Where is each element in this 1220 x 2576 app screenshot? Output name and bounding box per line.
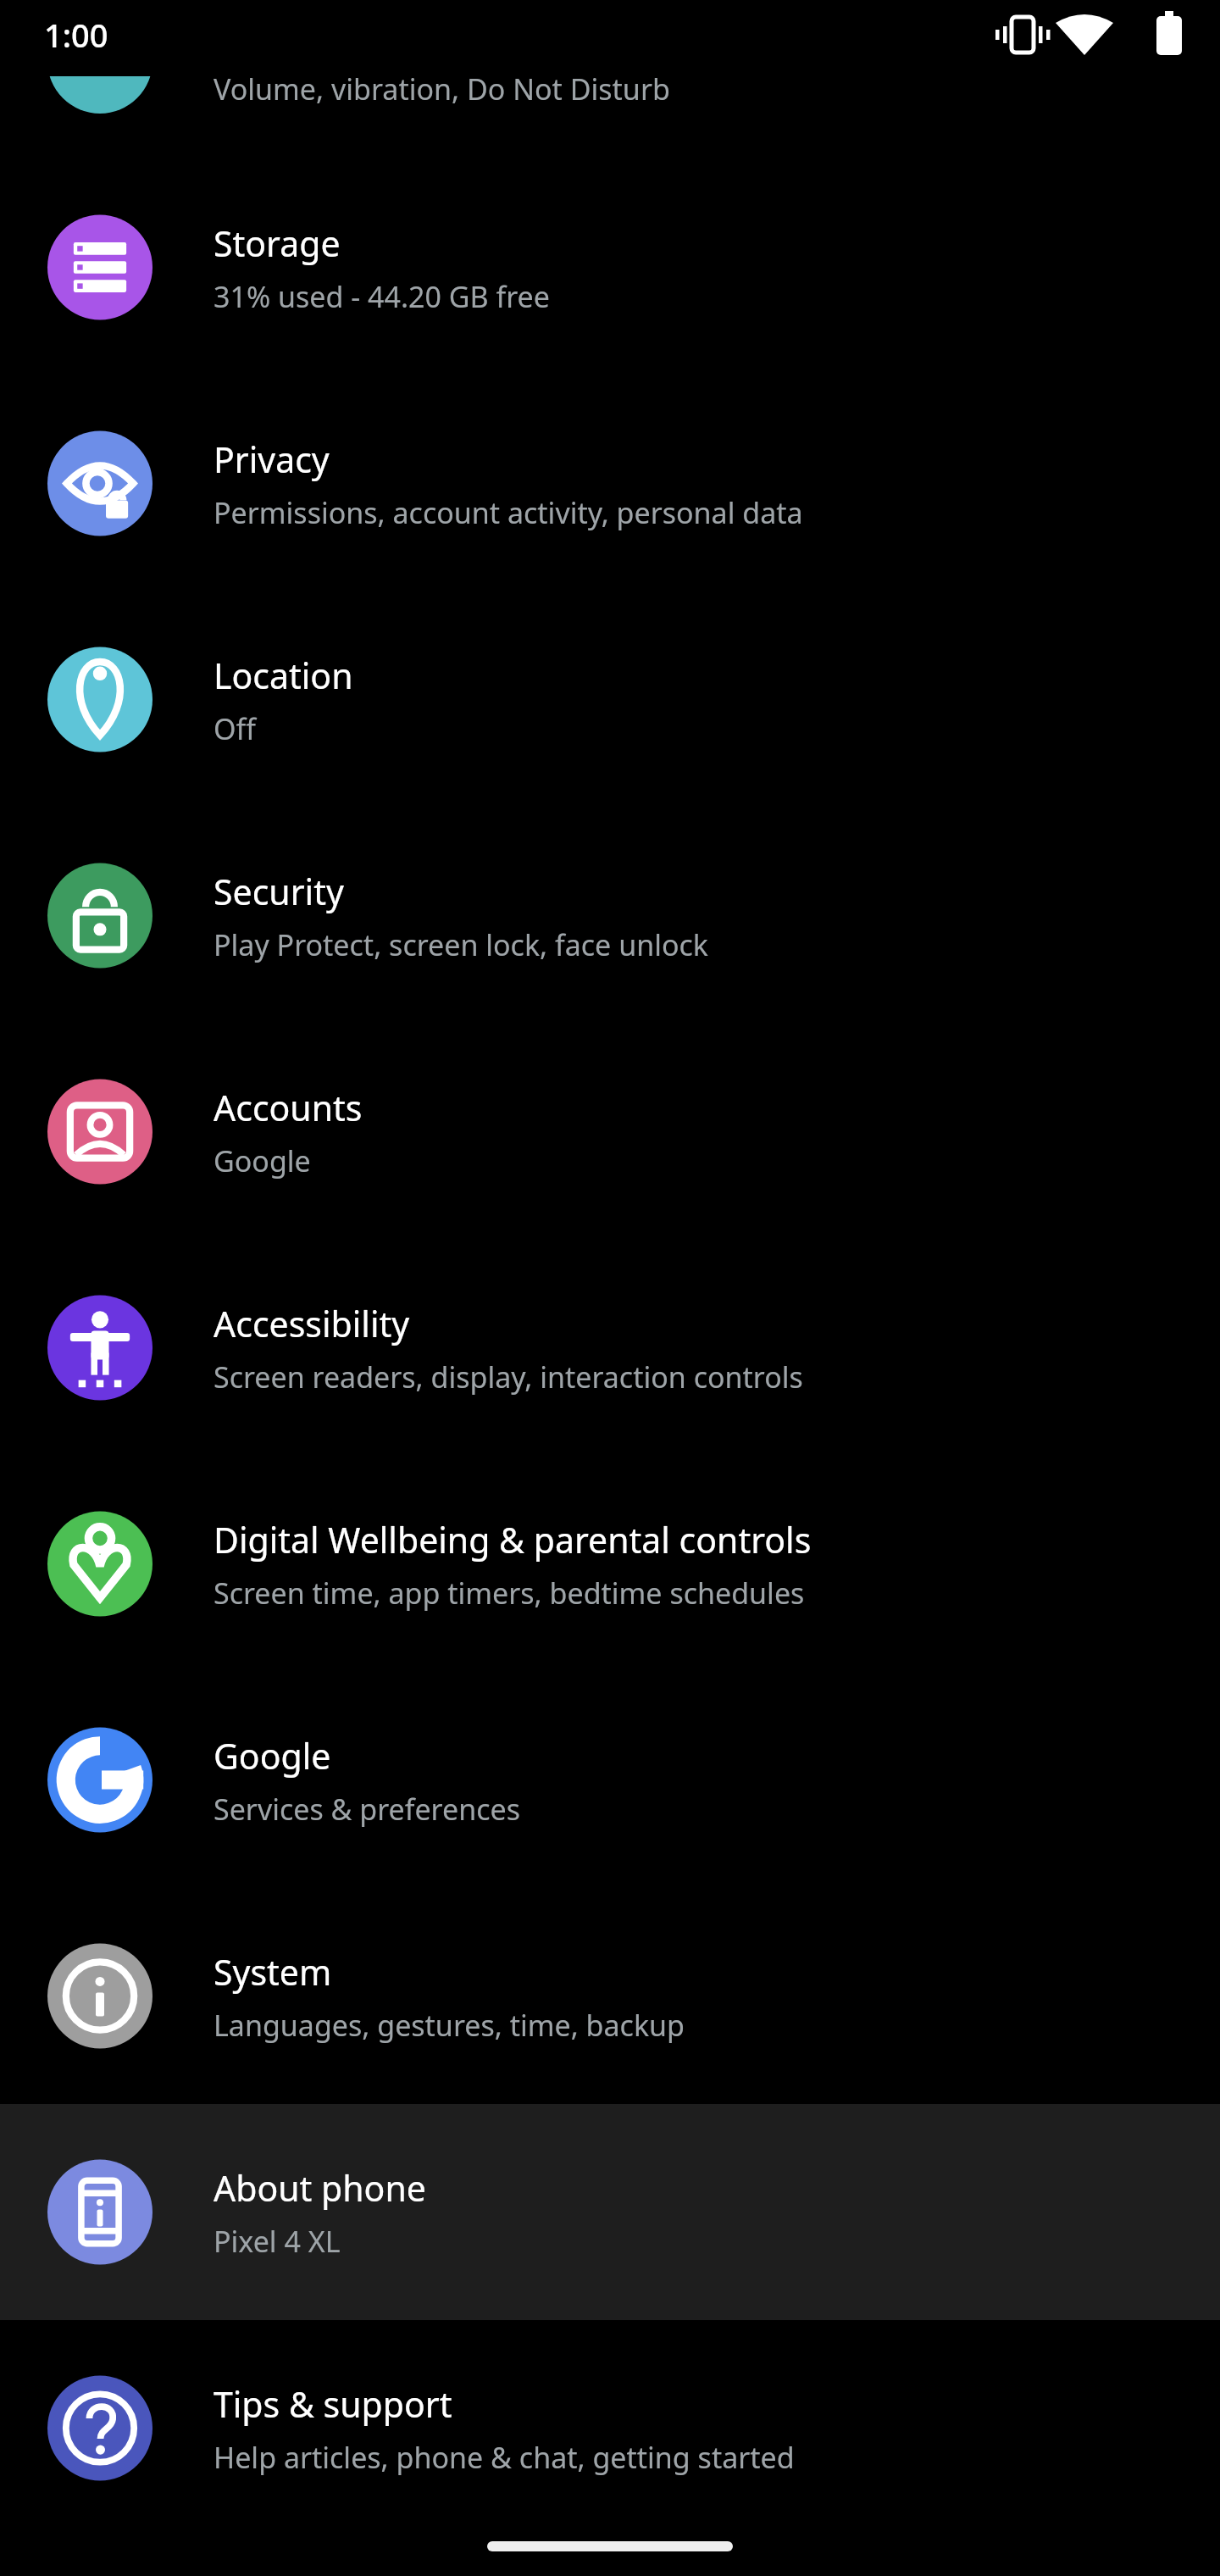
staticText: Services & preferences <box>213 1790 520 1829</box>
staticText: Accounts <box>213 1084 363 1131</box>
staticText: About phone <box>213 2164 426 2212</box>
staticText: Screen readers, display, interaction con… <box>213 1357 803 1396</box>
button[interactable]: Storage <box>0 159 1220 375</box>
staticText: Digital Wellbeing & parental controls <box>213 1516 812 1563</box>
button[interactable]: System <box>0 1888 1220 2104</box>
staticText: Security <box>213 868 344 915</box>
staticText: System <box>213 1948 332 1996</box>
staticText: Help articles, phone & chat, getting sta… <box>213 2438 795 2477</box>
button[interactable]: Volume, vibration, Do Not Disturb <box>0 76 1220 159</box>
button[interactable]: Digital Wellbeing & parental controls <box>0 1456 1220 1672</box>
button[interactable]: Google <box>0 1672 1220 1888</box>
staticText: Screen time, app timers, bedtime schedul… <box>213 1574 805 1613</box>
staticText: Storage <box>213 219 341 267</box>
button[interactable]: Accessibility <box>0 1240 1220 1456</box>
button[interactable]: Location <box>0 591 1220 808</box>
staticText: Languages, gestures, time, backup <box>213 2006 685 2045</box>
staticText: Pixel 4 XL <box>213 2222 341 2261</box>
button[interactable]: Privacy <box>0 375 1220 591</box>
staticText: 1:00 <box>44 13 108 57</box>
staticText: Google <box>213 1732 331 1779</box>
staticText: Volume, vibration, Do Not Disturb <box>213 69 670 108</box>
staticText: Google <box>213 1141 311 1180</box>
staticText: Accessibility <box>213 1300 410 1347</box>
button[interactable]: Accounts <box>0 1024 1220 1240</box>
button[interactable]: Tips & support <box>0 2320 1220 2536</box>
staticText: Location <box>213 652 353 699</box>
staticText: Play Protect, screen lock, face unlock <box>213 925 708 964</box>
button[interactable]: Security <box>0 808 1220 1024</box>
button[interactable]: About phone <box>0 2104 1220 2320</box>
staticText: Tips & support <box>213 2380 452 2428</box>
staticText: 31% used - 44.20 GB free <box>213 277 550 316</box>
staticText: Off <box>213 709 256 748</box>
staticText: Permissions, account activity, personal … <box>213 493 803 532</box>
staticText: Privacy <box>213 436 330 483</box>
